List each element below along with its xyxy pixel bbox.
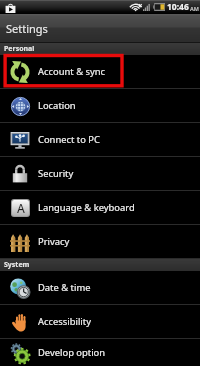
staticText: Settings [6, 21, 48, 36]
button[interactable]: A [0, 191, 200, 224]
staticText: Account & sync [38, 65, 106, 78]
staticText: Security [38, 167, 74, 180]
button[interactable]: Date & time [0, 271, 200, 304]
staticText: Accessibility [38, 315, 91, 328]
staticText: A [17, 200, 25, 216]
staticText: 10:46 [167, 1, 189, 13]
button[interactable]: Privacy [0, 225, 200, 258]
staticText: Language & keyboard [38, 201, 135, 214]
staticText: Location [38, 99, 76, 112]
button[interactable]: Connect to PC [0, 123, 200, 156]
button[interactable]: Accessibility [0, 305, 200, 338]
staticText: Connect to PC [38, 133, 100, 146]
staticText: Develop option [38, 346, 106, 359]
button[interactable]: Account & sync [0, 55, 200, 88]
staticText: Privacy [38, 235, 70, 248]
staticText: Date & time [38, 281, 91, 294]
staticText: AM [190, 5, 199, 12]
button[interactable]: Location [0, 89, 200, 122]
staticText: Personal [4, 44, 35, 54]
staticText: System [4, 260, 30, 270]
button[interactable]: Develop option [0, 339, 200, 366]
button[interactable]: Security [0, 157, 200, 190]
